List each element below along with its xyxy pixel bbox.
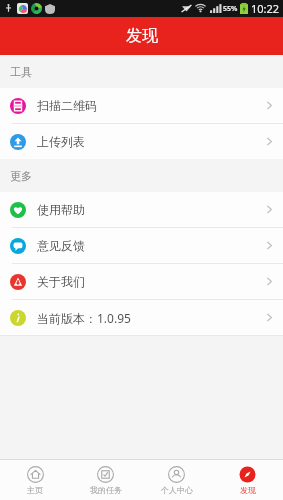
button[interactable]: 使用帮助 xyxy=(0,192,283,227)
staticText: 更多 xyxy=(10,169,32,183)
button[interactable]: 当前版本：1.0.95 xyxy=(0,300,283,335)
button[interactable]: 扫描二维码 xyxy=(0,88,283,123)
staticText: 意见反馈 xyxy=(37,238,85,253)
staticText: 上传列表 xyxy=(37,134,85,149)
staticText: 主页 xyxy=(27,485,43,495)
button[interactable]: 个人中心 xyxy=(141,460,212,500)
staticText: 发现 xyxy=(126,26,158,46)
staticText: 10:22 xyxy=(251,1,280,16)
staticText: 个人中心 xyxy=(161,485,193,495)
staticText: 关于我们 xyxy=(37,274,85,289)
staticText: 扫描二维码 xyxy=(37,98,97,113)
button[interactable]: 发现 xyxy=(212,460,283,500)
button[interactable]: 意见反馈 xyxy=(0,228,283,263)
button[interactable]: 上传列表 xyxy=(0,124,283,159)
staticText: 工具 xyxy=(10,65,32,79)
staticText: 55% xyxy=(223,4,238,14)
staticText: 使用帮助 xyxy=(37,202,85,217)
button[interactable]: 关于我们 xyxy=(0,264,283,299)
button[interactable]: 我的任务 xyxy=(70,460,141,500)
staticText: 发现 xyxy=(240,485,256,495)
staticText: 当前版本：1.0.95 xyxy=(37,310,131,326)
staticText: 我的任务 xyxy=(90,485,122,495)
button[interactable]: 主页 xyxy=(0,460,70,500)
